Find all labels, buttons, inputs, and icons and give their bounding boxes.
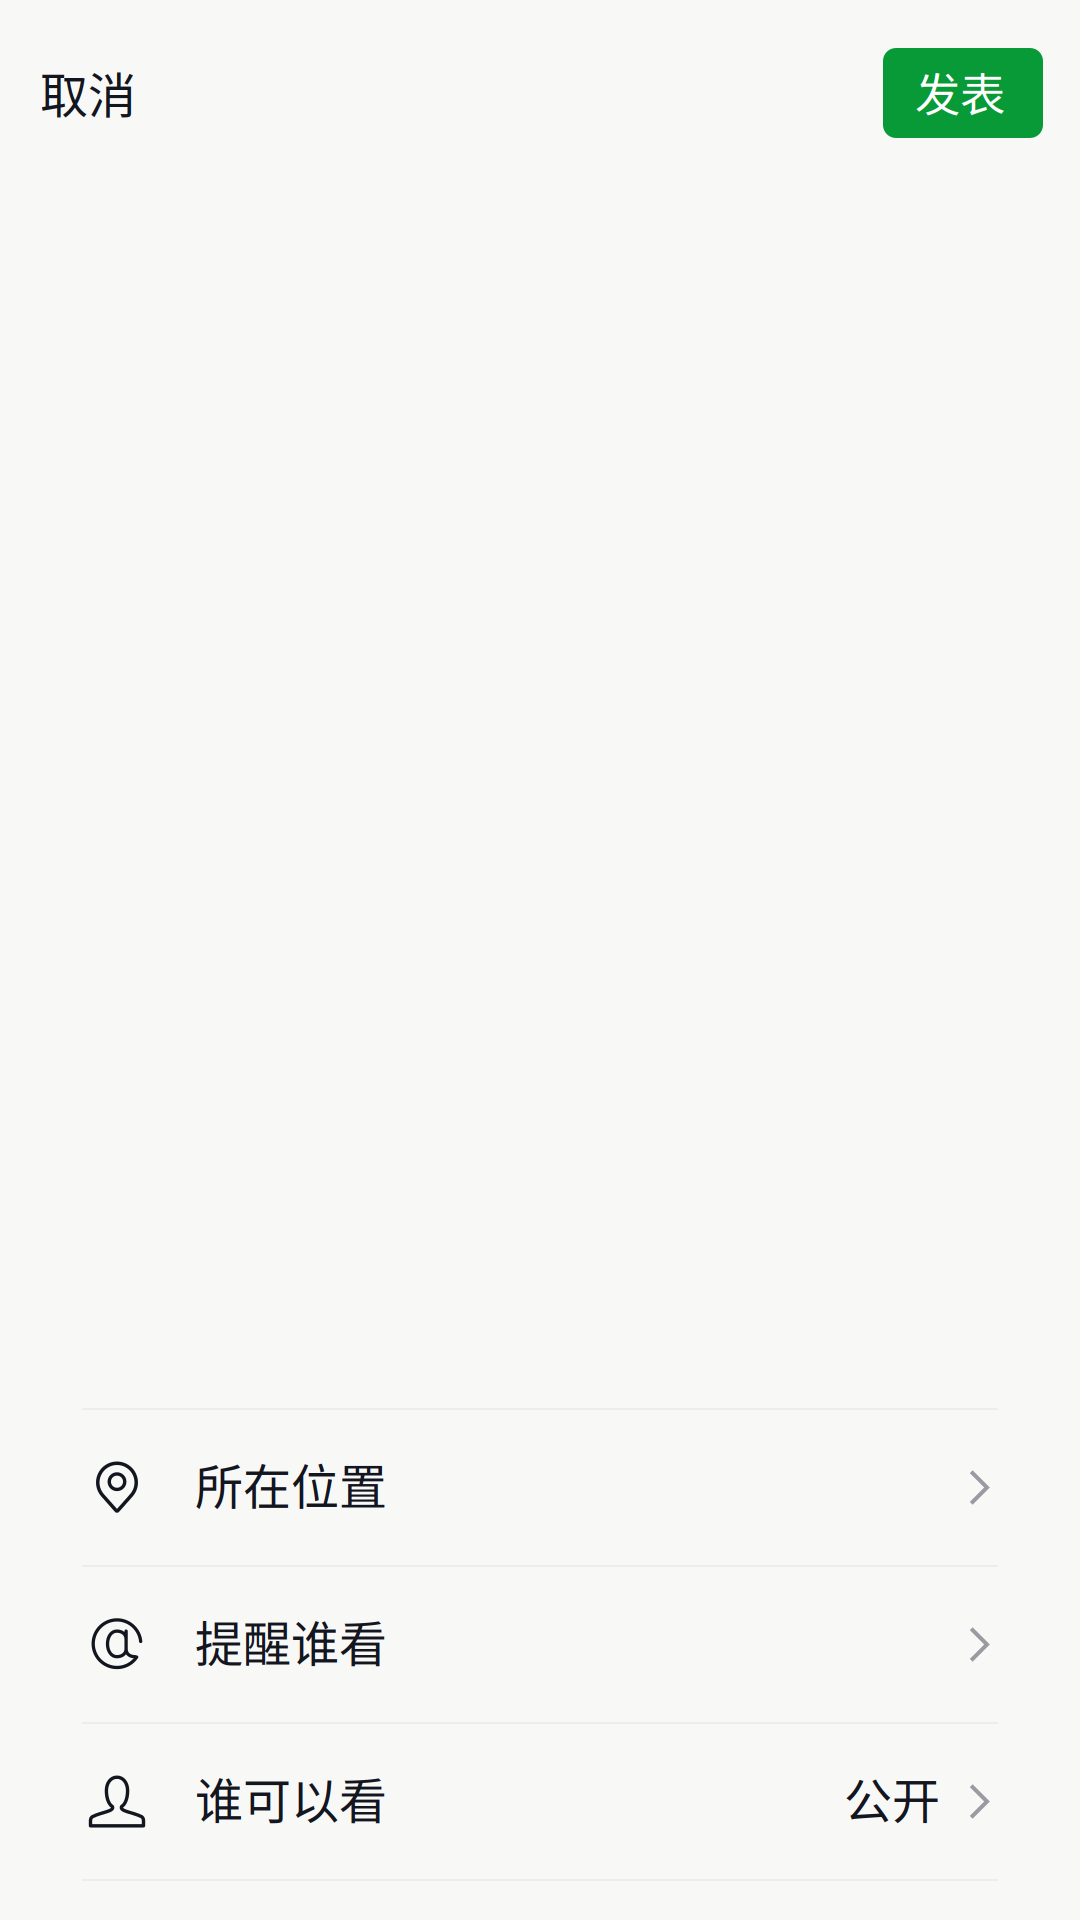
button[interactable]: 取消 <box>0 38 176 148</box>
staticText: 所在位置 <box>195 1449 387 1518</box>
staticText: 提醒谁看 <box>195 1606 387 1675</box>
staticText: 公开 <box>844 1763 940 1832</box>
staticText: 取消 <box>40 57 136 127</box>
button[interactable]: 发表 <box>883 48 1043 138</box>
staticText: 谁可以看 <box>195 1763 387 1832</box>
button[interactable]: 提醒谁看 <box>0 1567 1080 1722</box>
button[interactable]: 谁可以看 <box>0 1724 1080 1879</box>
staticText: 发表 <box>915 59 1005 125</box>
button[interactable]: 所在位置 <box>0 1410 1080 1565</box>
